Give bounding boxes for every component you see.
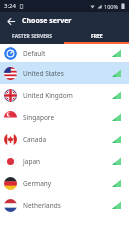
staticText: United Kingdom bbox=[23, 91, 73, 100]
staticText: United States bbox=[23, 69, 64, 78]
button[interactable]: United States bbox=[0, 62, 129, 84]
staticText: 100% bbox=[104, 3, 119, 10]
staticText: Choose server bbox=[22, 16, 72, 26]
button[interactable]: United Kingdom bbox=[0, 84, 129, 106]
button[interactable]: Default bbox=[0, 44, 129, 62]
button[interactable]: Canada bbox=[0, 128, 129, 150]
staticText: FASTER SERVERS bbox=[12, 33, 53, 40]
button[interactable]: Japan bbox=[0, 150, 129, 172]
staticText: FREE bbox=[91, 33, 103, 40]
button[interactable]: Germany bbox=[0, 172, 129, 194]
staticText: Canada bbox=[23, 135, 47, 144]
staticText: 3:24 bbox=[4, 2, 16, 10]
button[interactable] bbox=[5, 15, 17, 27]
staticText: Netherlands bbox=[23, 201, 61, 210]
button[interactable]: Netherlands bbox=[0, 194, 129, 216]
staticText: Default bbox=[23, 49, 46, 58]
button[interactable]: FREE bbox=[64, 29, 129, 44]
button[interactable]: FASTER SERVERS bbox=[0, 29, 64, 44]
staticText: Japan bbox=[23, 157, 41, 166]
staticText: Singapore bbox=[23, 113, 55, 122]
staticText: Germany bbox=[23, 179, 52, 188]
button[interactable]: Singapore bbox=[0, 106, 129, 128]
